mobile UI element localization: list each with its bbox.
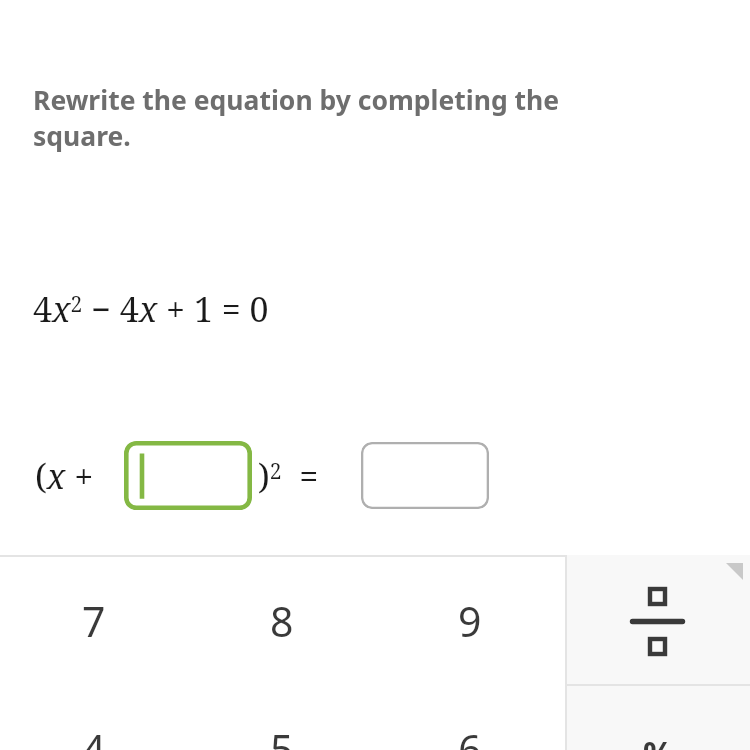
button[interactable]: 9 bbox=[376, 557, 564, 685]
staticText: square. bbox=[33, 118, 131, 154]
staticText: Rewrite the equation by completing the bbox=[33, 82, 560, 118]
staticText: 5 bbox=[270, 721, 294, 750]
staticText: 6 bbox=[458, 721, 482, 750]
staticText: (x + bbox=[35, 453, 94, 499]
button[interactable]: 8 bbox=[188, 557, 376, 685]
staticText: 7 bbox=[82, 593, 106, 649]
button[interactable]: 5 bbox=[188, 685, 376, 750]
button[interactable]: Answer field bbox=[361, 442, 489, 509]
staticText: 9 bbox=[458, 593, 482, 649]
button[interactable]: % bbox=[567, 686, 750, 750]
staticText: % bbox=[643, 730, 674, 750]
button[interactable]: Answer field, selected bbox=[124, 441, 252, 510]
staticText: 8 bbox=[270, 593, 294, 649]
staticText: )2 = bbox=[258, 453, 319, 499]
button[interactable]: Fraction bbox=[567, 557, 750, 684]
staticText: 4 bbox=[82, 721, 106, 750]
button[interactable]: 6 bbox=[376, 685, 564, 750]
staticText: 4x2 − 4x + 1 = 0 bbox=[33, 286, 269, 332]
button[interactable]: 7 bbox=[0, 557, 188, 685]
button[interactable]: 4 bbox=[0, 685, 188, 750]
